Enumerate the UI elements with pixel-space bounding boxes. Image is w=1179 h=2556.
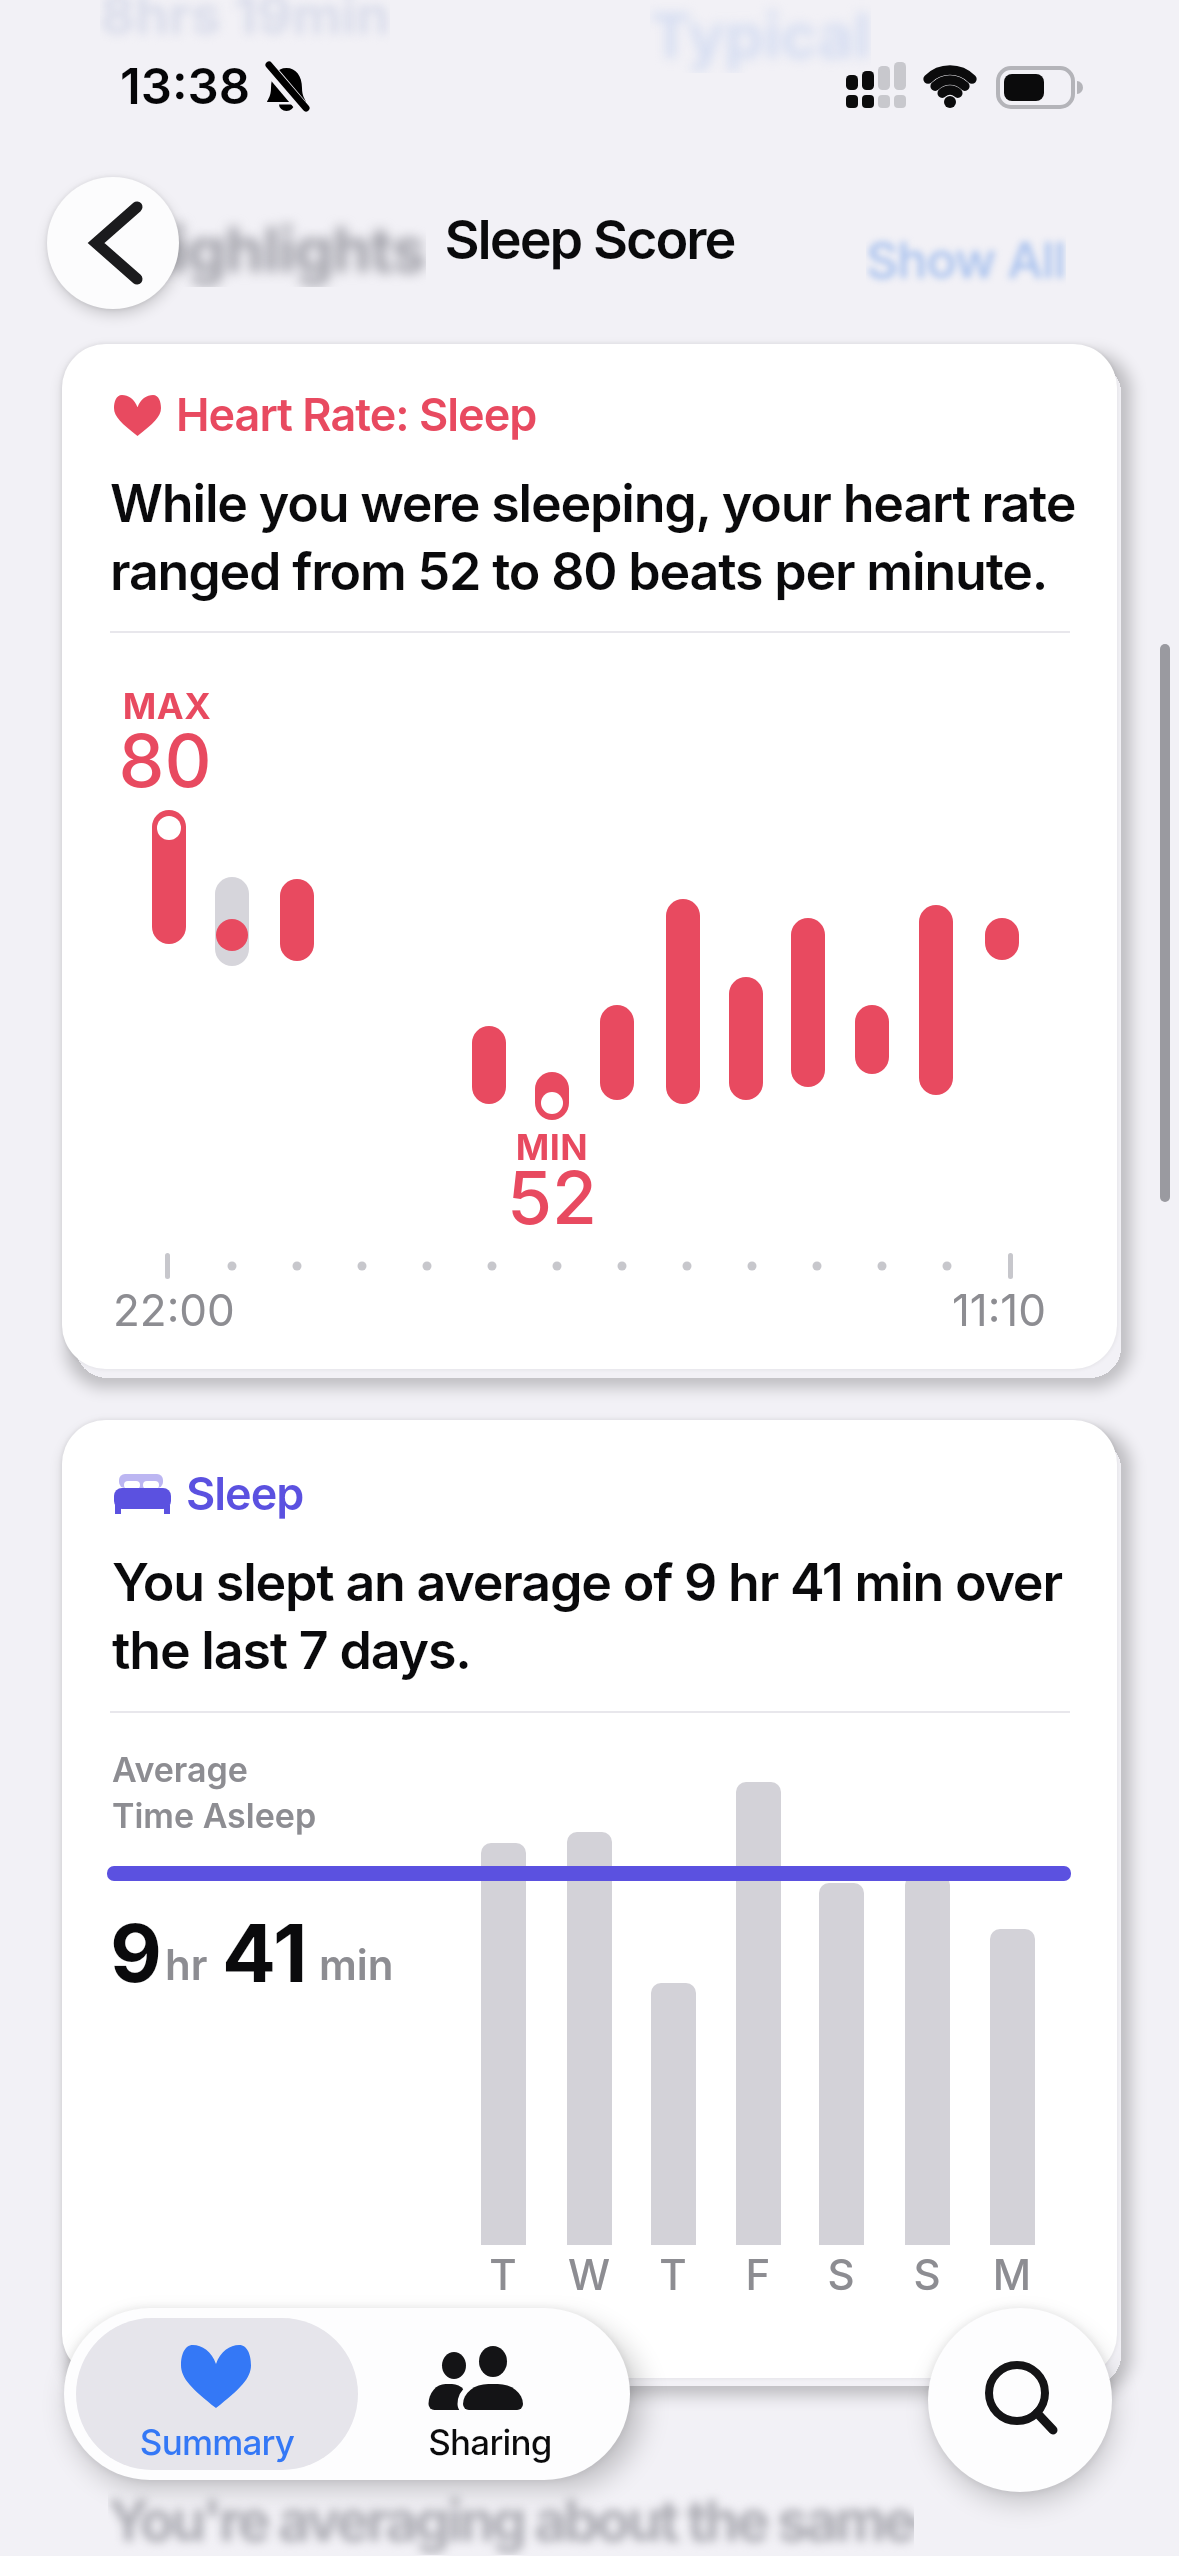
staticText: hr [165, 1939, 208, 1990]
staticText: You're averaging about the same [108, 2487, 914, 2555]
staticText: Summary [76, 2421, 358, 2463]
staticText: W [539, 2249, 639, 2300]
button[interactable] [62, 1420, 1117, 2378]
staticText: Typical [650, 0, 871, 73]
staticText: MAX [67, 684, 267, 728]
staticText: Sharing [358, 2421, 622, 2463]
button[interactable]: Sharing [358, 2318, 622, 2470]
staticText: You slept an average of 9 hr 41 min over… [112, 1551, 1062, 1682]
staticText: Sleep Score [0, 207, 1179, 272]
staticText: M [962, 2249, 1062, 2300]
staticText: 11:10 [846, 1283, 1046, 1336]
staticText: Sleep [186, 1466, 304, 1520]
button[interactable] [62, 344, 1117, 1369]
button[interactable] [47, 177, 179, 309]
staticText: min [319, 1939, 394, 1990]
staticText: S [877, 2249, 977, 2300]
staticText: F [708, 2249, 808, 2300]
staticText: T [453, 2249, 553, 2300]
button[interactable]: Summary [76, 2318, 358, 2470]
staticText: 52 [452, 1153, 652, 1241]
staticText: 80 [65, 716, 265, 804]
staticText: 8hrs 19min [100, 0, 390, 47]
staticText: S [791, 2249, 891, 2300]
staticText: Highlights [126, 212, 426, 287]
staticText: While you were sleeping, your heart rate… [110, 472, 1076, 603]
staticText: Heart Rate: Sleep [176, 387, 537, 441]
staticText: 13:38 [120, 57, 251, 116]
button[interactable] [928, 2308, 1112, 2492]
staticText: Average Time Asleep [112, 1749, 317, 1836]
staticText: 22:00 [113, 1283, 235, 1336]
staticText: Show All [866, 230, 1066, 290]
staticText: MIN [452, 1125, 652, 1169]
staticText: 9 [110, 1904, 162, 2001]
staticText: 41 [222, 1904, 308, 2001]
staticText: T [623, 2249, 723, 2300]
